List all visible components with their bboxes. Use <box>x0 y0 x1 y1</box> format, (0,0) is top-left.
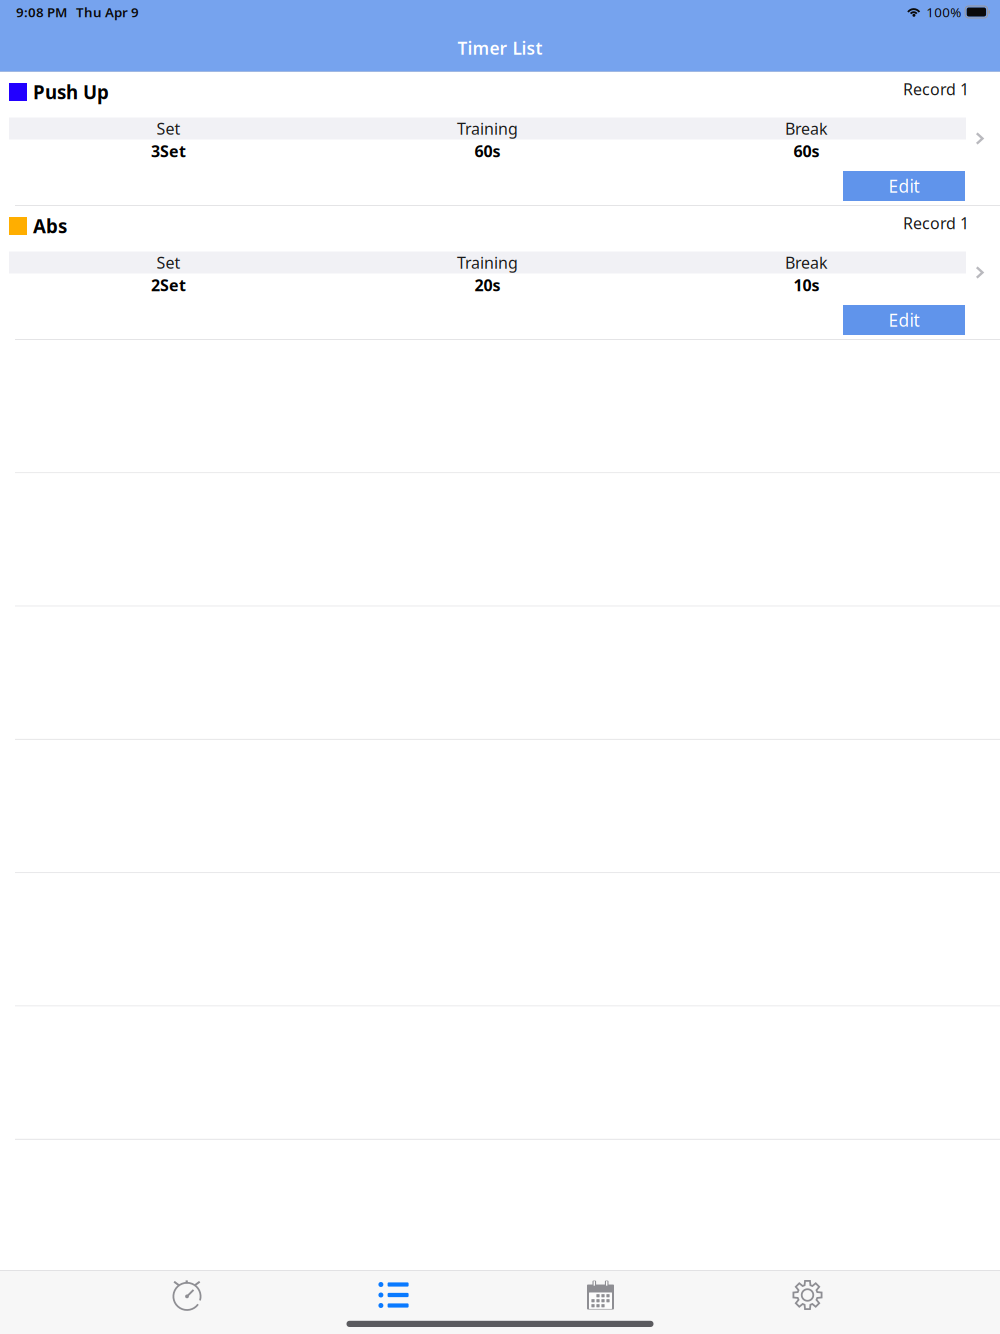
staticText: 60s <box>474 140 500 162</box>
staticText: Training <box>457 118 518 139</box>
staticText: 2Set <box>151 274 186 296</box>
staticText: 20s <box>474 274 500 296</box>
staticText: Break <box>785 118 828 139</box>
staticText: 9:08 PM <box>16 3 67 21</box>
staticText: 100% <box>926 3 961 21</box>
staticText: Record 1 <box>903 78 969 100</box>
button[interactable]: Calendar <box>497 1272 704 1318</box>
staticText: Push Up <box>33 80 109 104</box>
staticText: Abs <box>33 214 67 238</box>
button[interactable]: Abs <box>0 206 1000 339</box>
staticText: Timer List <box>457 36 542 59</box>
button[interactable]: Timer List <box>290 1272 497 1318</box>
staticText: Edit <box>888 308 919 331</box>
button[interactable]: Edit <box>843 171 965 201</box>
button[interactable]: Push Up <box>0 72 1000 205</box>
staticText: 10s <box>793 274 819 296</box>
staticText: Set <box>156 118 180 139</box>
staticText: 60s <box>793 140 819 162</box>
staticText: Edit <box>888 174 919 197</box>
staticText: Break <box>785 252 828 273</box>
staticText: Thu Apr 9 <box>76 3 139 21</box>
button[interactable]: Edit <box>843 305 965 335</box>
staticText: 3Set <box>151 140 186 162</box>
staticText: Set <box>156 252 180 273</box>
button[interactable]: Settings <box>704 1272 911 1318</box>
button[interactable]: Timer <box>83 1272 290 1318</box>
staticText: Training <box>457 252 518 273</box>
staticText: Record 1 <box>903 212 969 234</box>
